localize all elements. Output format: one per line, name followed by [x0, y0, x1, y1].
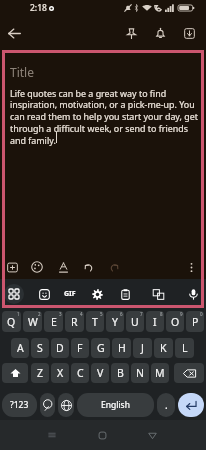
staticText: E [51, 315, 57, 329]
staticText: M [155, 366, 165, 380]
button[interactable]: Enter [178, 393, 204, 417]
button[interactable]: GIF [60, 284, 80, 304]
button[interactable]: Back [2, 21, 26, 45]
button[interactable]: K [154, 338, 173, 358]
staticText: H [118, 341, 126, 355]
staticText: 3 [59, 311, 62, 317]
button[interactable]: Archive [176, 20, 202, 46]
button[interactable]: O [166, 311, 184, 332]
button[interactable]: X [51, 363, 69, 383]
button[interactable]: Undo [78, 257, 98, 277]
button[interactable]: V [91, 363, 109, 383]
staticText: Z [37, 366, 44, 380]
button[interactable]: More options [181, 257, 201, 277]
button[interactable]: U [126, 311, 144, 332]
button[interactable]: Add [2, 257, 22, 277]
staticText: X [57, 366, 64, 380]
staticText: G [97, 341, 105, 355]
staticText: 8 [160, 311, 163, 317]
staticText: B [117, 366, 124, 380]
button[interactable]: Language [58, 393, 74, 417]
button[interactable]: English [77, 393, 154, 417]
staticText: F [77, 341, 83, 355]
button[interactable]: H [112, 338, 131, 358]
button[interactable]: P [186, 311, 204, 332]
staticText: 1 [17, 311, 20, 317]
button[interactable]: Back [140, 423, 164, 447]
staticText: English [101, 399, 130, 411]
button[interactable]: D [51, 338, 69, 358]
button[interactable]: Translate [148, 284, 168, 304]
button[interactable]: Pin [118, 20, 144, 46]
button[interactable]: Q [2, 311, 21, 332]
staticText: N [136, 366, 144, 380]
button[interactable]: Recent apps [40, 423, 64, 447]
button[interactable]: Home [90, 423, 114, 447]
button[interactable]: Emoji [40, 393, 55, 417]
staticText: 2 [38, 311, 41, 317]
button[interactable]: Shift [2, 363, 28, 383]
staticText: O [171, 315, 180, 329]
staticText: 5 [100, 311, 103, 317]
button[interactable]: B [111, 363, 129, 383]
button[interactable]: S [31, 338, 49, 358]
staticText: L [182, 341, 188, 355]
staticText: Y [112, 315, 118, 329]
button[interactable]: L [175, 338, 194, 358]
staticText: V [97, 366, 104, 380]
staticText: I [153, 315, 157, 329]
staticText: 6 [120, 311, 123, 317]
button[interactable]: Stickers [34, 284, 54, 304]
button[interactable]: C [71, 363, 89, 383]
button[interactable]: Settings [87, 284, 107, 304]
button[interactable]: Reminder [147, 20, 173, 46]
button[interactable]: Voice input [183, 284, 203, 304]
staticText: 4 [80, 311, 83, 317]
staticText: T [92, 315, 98, 329]
staticText: P [192, 315, 199, 329]
button[interactable]: W [23, 311, 42, 332]
button[interactable]: . [157, 393, 175, 417]
button[interactable]: ?123 [2, 393, 37, 417]
button[interactable]: N [131, 363, 149, 383]
staticText: 0 [200, 311, 203, 317]
button[interactable]: I [146, 311, 164, 332]
staticText: R [71, 315, 78, 329]
button[interactable]: G [91, 338, 110, 358]
staticText: 2:18 [30, 2, 47, 14]
button[interactable]: M [151, 363, 169, 383]
button[interactable]: J [133, 338, 152, 358]
staticText: C [77, 366, 84, 380]
staticText: . [165, 398, 168, 412]
button[interactable]: Text format [53, 257, 73, 277]
button[interactable]: Backspace [174, 363, 204, 383]
staticText: U [131, 315, 139, 329]
staticText: A [17, 341, 24, 355]
button[interactable]: A [11, 338, 29, 358]
staticText: 9 [180, 311, 183, 317]
button[interactable]: R [65, 311, 84, 332]
button[interactable]: Colour palette [27, 257, 47, 277]
staticText: W [28, 315, 38, 329]
button[interactable]: Redo [104, 257, 124, 277]
button[interactable]: F [71, 338, 89, 358]
staticText: J [141, 341, 144, 355]
staticText: Q [7, 315, 16, 329]
button[interactable]: T [86, 311, 104, 332]
staticText: 7 [140, 311, 143, 317]
staticText: Life quotes can be a great way to find i… [10, 87, 201, 147]
staticText: D [56, 341, 64, 355]
button[interactable]: Z [31, 363, 49, 383]
button[interactable]: Clipboard [115, 284, 135, 304]
button[interactable]: Apps [4, 284, 24, 304]
staticText: Title [10, 64, 34, 80]
staticText: GIF [64, 289, 76, 299]
staticText: ?123 [10, 399, 29, 411]
button[interactable]: Y [106, 311, 124, 332]
button[interactable]: E [44, 311, 63, 332]
staticText: K [160, 341, 167, 355]
staticText: S [37, 341, 43, 355]
